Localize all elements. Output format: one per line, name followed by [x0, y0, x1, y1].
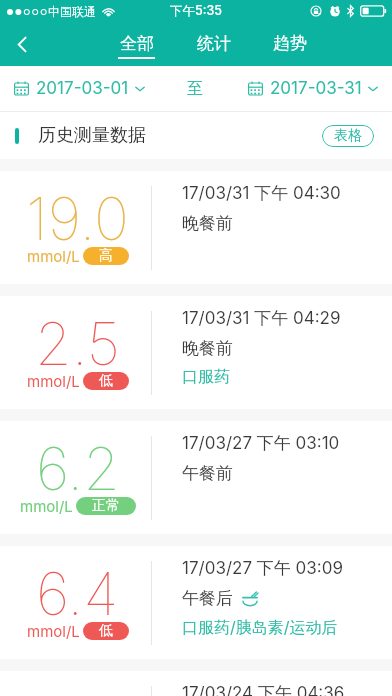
staticText: 2.5: [35, 308, 121, 379]
staticText: 口服药/胰岛素/运动后: [182, 617, 338, 637]
staticText: 口服药: [182, 367, 230, 387]
button[interactable]: 表格: [322, 125, 374, 147]
button[interactable]: 2017-03-01: [0, 66, 153, 111]
staticText: 晚餐前: [182, 213, 233, 234]
button[interactable]: Back: [0, 22, 44, 66]
button[interactable]: 2017-03-31: [248, 66, 388, 111]
staticText: 趋势: [273, 33, 307, 54]
staticText: 17/03/27 下午 03:10: [182, 433, 340, 455]
button[interactable]: 19.0: [0, 171, 392, 284]
staticText: 17/03/31 下午 04:29: [182, 308, 341, 330]
staticText: 高: [99, 247, 113, 265]
button[interactable]: 统计: [197, 22, 231, 66]
button[interactable]: 全部: [118, 22, 155, 66]
button[interactable]: 6.4: [0, 546, 392, 659]
staticText: 统计: [197, 33, 231, 54]
staticText: 低: [99, 622, 113, 640]
staticText: 中国联通: [48, 4, 96, 19]
staticText: 历史测量数据: [38, 124, 146, 147]
staticText: 2017-03-31: [270, 78, 362, 99]
button[interactable]: 2.5: [0, 296, 392, 409]
button[interactable]: 6.2: [0, 421, 392, 534]
staticText: 午餐后: [182, 588, 233, 609]
staticText: 17/03/24 下午 04:36: [182, 683, 345, 696]
button[interactable]: 趋势: [273, 22, 307, 66]
staticText: 低: [99, 372, 113, 390]
button[interactable]: mmol/L: [0, 671, 392, 696]
staticText: 午餐前: [182, 463, 233, 484]
staticText: 晚餐前: [182, 338, 233, 359]
staticText: 下午5:35: [170, 3, 223, 19]
staticText: mmol/L: [27, 622, 80, 640]
staticText: 2017-03-01: [36, 78, 129, 99]
staticText: 17/03/31 下午 04:30: [182, 183, 341, 205]
staticText: 至: [187, 79, 203, 99]
staticText: 正常: [92, 497, 120, 515]
staticText: 19.0: [26, 183, 129, 254]
staticText: 表格: [334, 127, 362, 145]
staticText: 17/03/27 下午 03:09: [182, 558, 343, 580]
staticText: mmol/L: [20, 497, 73, 515]
staticText: mmol/L: [27, 247, 80, 265]
staticText: 6.4: [36, 558, 119, 629]
staticText: 全部: [120, 33, 154, 54]
staticText: mmol/L: [27, 372, 80, 390]
staticText: 6.2: [36, 433, 120, 504]
